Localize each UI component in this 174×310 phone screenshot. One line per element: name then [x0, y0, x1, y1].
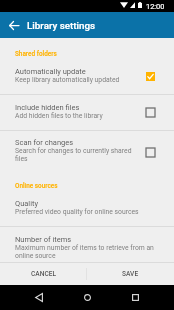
staticText: Add hidden files to the library	[15, 112, 103, 120]
staticText: Keep library automatically updated	[15, 76, 120, 84]
button[interactable]: SAVE	[87, 263, 174, 285]
button[interactable]: Scan for changes	[0, 131, 174, 173]
staticText: Automatically update	[15, 67, 86, 76]
button[interactable]: Home	[63, 285, 111, 310]
staticText: Shared folders	[15, 50, 57, 58]
staticText: Library settings	[27, 20, 96, 31]
button[interactable]: Include hidden files	[0, 95, 174, 130]
button[interactable]: Automatically update	[0, 58, 174, 94]
staticText: Online sources	[15, 182, 58, 190]
button[interactable]: Navigate up	[4, 15, 24, 35]
button[interactable]: Recent apps	[111, 285, 159, 310]
staticText: Include hidden files	[15, 103, 80, 112]
button[interactable]: Unchecked	[146, 108, 155, 117]
button[interactable]: CANCEL	[0, 263, 86, 285]
button[interactable]: Number of items	[0, 227, 174, 262]
button[interactable]: Quality	[0, 191, 174, 226]
staticText: 12:00	[146, 2, 165, 11]
staticText: CANCEL	[31, 270, 56, 278]
staticText: Number of items	[15, 235, 72, 244]
staticText: Preferred video quality for online sourc…	[15, 208, 139, 216]
staticText: Maximum number of items to retrieve from…	[15, 244, 160, 260]
button[interactable]: Unchecked	[146, 148, 155, 157]
button[interactable]: Back	[15, 285, 63, 310]
staticText: Scan for changes	[15, 138, 74, 147]
staticText: Search for changes to currently shared f…	[15, 147, 141, 163]
staticText: SAVE	[122, 270, 139, 278]
button[interactable]: Checked	[146, 72, 155, 81]
staticText: Quality	[15, 199, 39, 208]
